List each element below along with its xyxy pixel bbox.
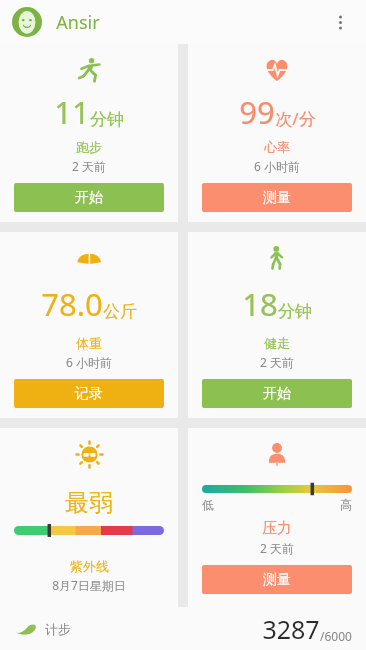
staticText: 公斤 xyxy=(103,301,137,322)
button[interactable]: 78.0 xyxy=(0,232,178,418)
staticText: 分钟 xyxy=(90,109,124,130)
staticText: 8月7日星期日 xyxy=(52,577,126,593)
staticText: 6 小时前 xyxy=(254,158,300,174)
staticText: 3287 xyxy=(262,612,320,646)
button[interactable]: 低 xyxy=(188,428,366,607)
staticText: 分钟 xyxy=(278,301,312,322)
staticText: 次/分 xyxy=(275,107,316,130)
button[interactable]: 开始 xyxy=(202,379,352,408)
button[interactable]: 最弱 xyxy=(0,428,178,607)
button[interactable]: 计步 xyxy=(0,607,366,650)
staticText: 体重 xyxy=(76,335,102,351)
staticText: 99 xyxy=(239,91,275,133)
staticText: 2 天前 xyxy=(72,158,106,174)
staticText: Ansir xyxy=(56,10,100,35)
staticText: 测量 xyxy=(263,189,291,207)
staticText: 心率 xyxy=(264,139,290,155)
button[interactable]: 开始 xyxy=(14,183,164,212)
button[interactable]: 测量 xyxy=(202,183,352,212)
staticText: 2 天前 xyxy=(260,540,294,556)
staticText: 最弱 xyxy=(65,488,113,518)
button[interactable]: More options xyxy=(322,4,358,40)
staticText: 测量 xyxy=(263,571,291,589)
staticText: 开始 xyxy=(263,385,291,403)
staticText: 78.0 xyxy=(41,283,103,325)
staticText: 高 xyxy=(340,497,352,512)
staticText: 健走 xyxy=(264,335,290,351)
staticText: 压力 xyxy=(262,519,292,538)
staticText: 跑步 xyxy=(76,139,102,155)
staticText: 2 天前 xyxy=(260,354,294,370)
button[interactable]: 11 xyxy=(0,44,178,222)
button[interactable]: 99 xyxy=(188,44,366,222)
staticText: 紫外线 xyxy=(70,558,109,574)
staticText: 开始 xyxy=(75,189,103,207)
staticText: 6 小时前 xyxy=(66,354,112,370)
button[interactable]: 测量 xyxy=(202,565,352,594)
staticText: 计步 xyxy=(45,621,71,637)
staticText: /6000 xyxy=(320,628,352,644)
staticText: 低 xyxy=(202,497,214,512)
button[interactable]: 记录 xyxy=(14,379,164,408)
staticText: 记录 xyxy=(75,385,103,403)
button[interactable]: Profile xyxy=(12,7,42,37)
staticText: 11 xyxy=(54,91,90,133)
button[interactable]: 18 xyxy=(188,232,366,418)
staticText: 18 xyxy=(242,283,278,325)
